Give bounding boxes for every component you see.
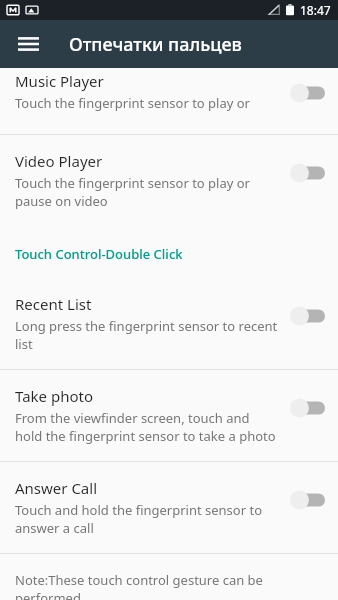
button[interactable]: Toggle, off: [289, 305, 325, 327]
staticText: Отпечатки пальцев: [69, 32, 242, 57]
staticText: Recent List: [15, 294, 92, 314]
staticText: Note:These touch control gesture can be …: [15, 571, 328, 600]
button[interactable]: Recent List: [0, 282, 338, 369]
button[interactable]: Toggle, off: [289, 489, 325, 511]
button[interactable]: Music Player: [0, 68, 338, 134]
staticText: From the viewfinder screen, touch and ho…: [15, 409, 276, 445]
staticText: 18:47: [300, 2, 331, 18]
button[interactable]: Toggle, off: [289, 397, 325, 419]
staticText: Touch the fingerprint sensor to play or …: [15, 174, 250, 210]
staticText: Take photo: [15, 386, 93, 406]
button[interactable]: Open navigation menu: [6, 22, 50, 66]
staticText: Answer Call: [15, 478, 98, 498]
button[interactable]: Answer Call: [0, 462, 338, 553]
button[interactable]: Take photo: [0, 370, 338, 461]
staticText: Touch and hold the fingerprint sensor to…: [15, 501, 263, 537]
staticText: Music Player: [15, 71, 104, 91]
button[interactable]: Video Player: [0, 135, 338, 226]
staticText: Touch the fingerprint sensor to play or …: [15, 94, 250, 113]
staticText: Long press the fingerprint sensor to rec…: [15, 317, 278, 353]
button[interactable]: Toggle, off: [289, 162, 325, 184]
staticText: Touch Control-Double Click: [15, 245, 183, 263]
button[interactable]: Toggle, off: [289, 82, 325, 104]
staticText: Video Player: [15, 151, 103, 171]
